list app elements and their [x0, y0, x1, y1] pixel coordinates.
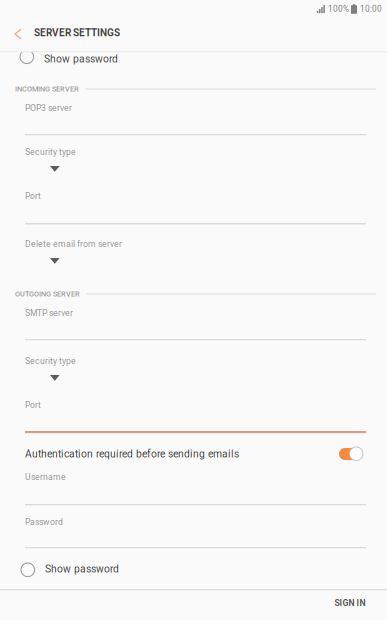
- button[interactable]: SIGN IN: [320, 589, 380, 617]
- button[interactable]: Show password: [20, 50, 360, 70]
- button[interactable]: Port: [25, 191, 366, 231]
- staticText: Show password: [45, 563, 119, 575]
- staticText: OUTGOING SERVER: [15, 290, 80, 298]
- staticText: Port: [25, 400, 41, 410]
- button[interactable]: POP3 server: [25, 103, 366, 142]
- staticText: Security type: [25, 356, 76, 366]
- staticText: Security type: [25, 147, 76, 157]
- staticText: POP3 server: [25, 103, 72, 113]
- button[interactable]: Security type: [25, 147, 366, 231]
- staticText: Password: [25, 517, 63, 527]
- staticText: Username: [25, 472, 66, 482]
- staticText: 100%: [328, 4, 349, 14]
- staticText: Authentication required before sending e…: [25, 448, 239, 460]
- button[interactable]: Delete email from server: [25, 239, 366, 267]
- staticText: INCOMING SERVER: [15, 85, 79, 93]
- button[interactable]: Password: [25, 517, 366, 555]
- staticText: SIGN IN: [334, 598, 365, 608]
- staticText: 10:00: [360, 4, 382, 14]
- staticText: Delete email from server: [25, 239, 122, 249]
- staticText: SERVER SETTINGS: [34, 27, 120, 39]
- staticText: Port: [25, 191, 41, 201]
- button[interactable]: Security type: [25, 356, 366, 440]
- button[interactable]: Show password: [21, 561, 361, 581]
- staticText: Show password: [44, 53, 118, 65]
- button[interactable]: Username: [25, 472, 366, 512]
- button[interactable]: Authentication required before sending e…: [25, 444, 366, 464]
- staticText: SMTP server: [25, 308, 73, 318]
- button[interactable]: SMTP server: [25, 308, 366, 347]
- button[interactable]: Port: [25, 400, 366, 439]
- button[interactable]: Back: [2, 18, 34, 50]
